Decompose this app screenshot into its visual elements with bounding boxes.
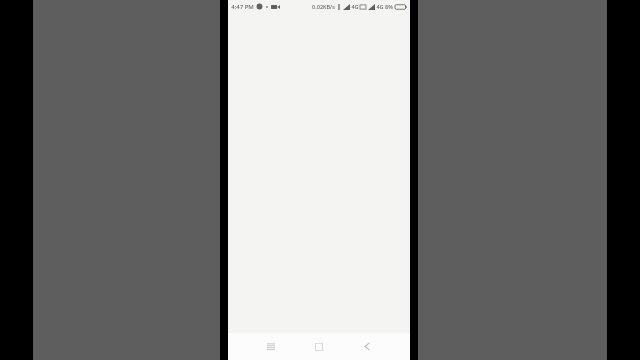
button[interactable]: Recent apps [254, 333, 288, 360]
button[interactable]: Back [350, 333, 384, 360]
staticText: 4:47 PM [231, 3, 254, 11]
staticText: 4G [376, 3, 384, 10]
staticText: 4G [351, 3, 359, 10]
staticText: 8% [385, 3, 393, 10]
staticText: 0.02KB/s [312, 3, 335, 10]
button[interactable]: Home [302, 333, 336, 360]
